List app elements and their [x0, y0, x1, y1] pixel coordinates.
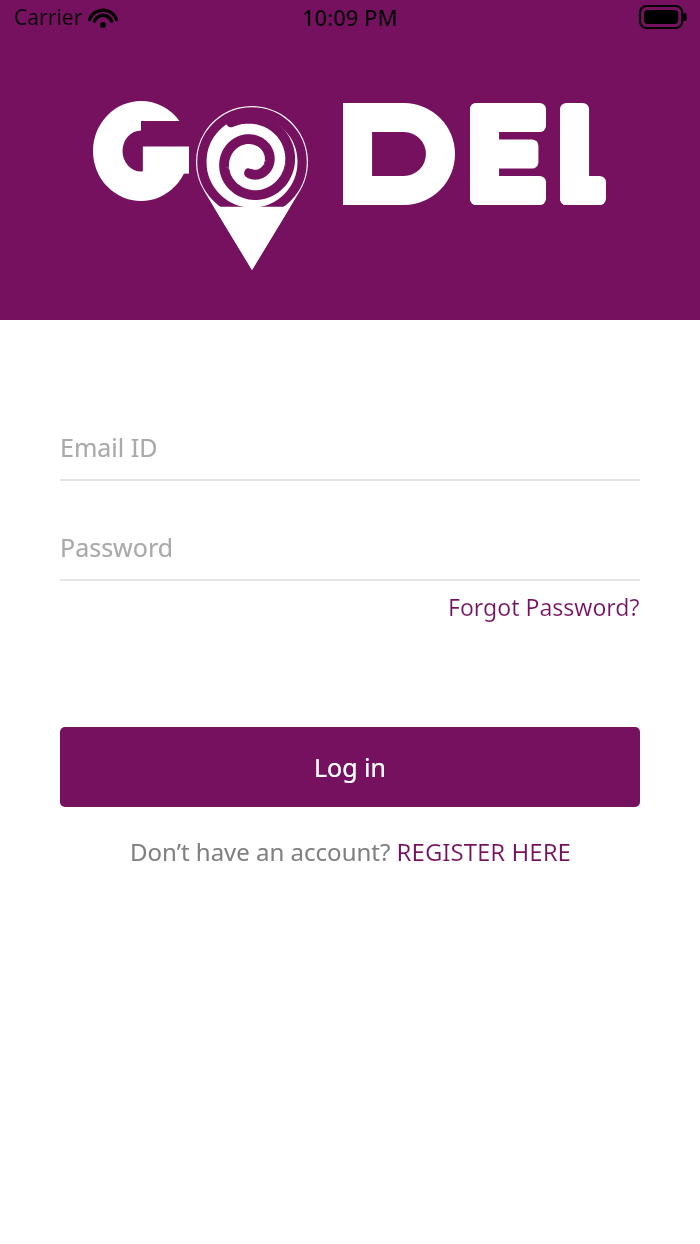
button[interactable]: Forgot Password?: [448, 591, 640, 622]
button[interactable]: Log in: [60, 727, 640, 807]
button[interactable]: Email ID: [60, 430, 640, 481]
button[interactable]: Don’t have an account? REGISTER HERE: [0, 835, 700, 868]
staticText: Forgot Password?: [448, 591, 640, 622]
staticText: Carrier: [14, 3, 83, 32]
staticText: Don’t have an account? REGISTER HERE: [130, 835, 571, 868]
other: GODEL: [90, 88, 610, 273]
staticText: 10:09 PM: [302, 2, 398, 32]
staticText: Email ID: [60, 430, 158, 464]
staticText: Log in: [314, 750, 387, 784]
staticText: Password: [60, 530, 174, 564]
button[interactable]: Password: [60, 530, 640, 581]
